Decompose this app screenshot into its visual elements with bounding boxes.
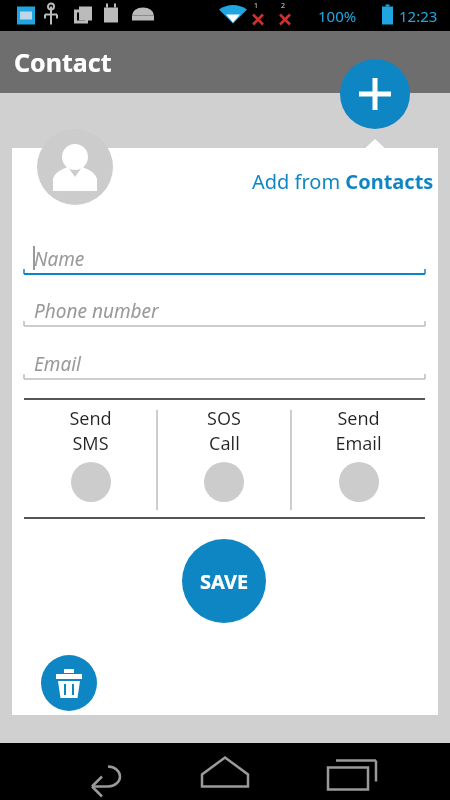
button[interactable]: SOS [164, 406, 284, 516]
staticText: SAVE [200, 568, 249, 595]
staticText: Contact [14, 45, 112, 79]
staticText: Name [34, 246, 85, 272]
staticText: Phone number [34, 298, 159, 324]
button[interactable]: Delete [41, 655, 97, 711]
staticText: 1 [254, 1, 259, 11]
button[interactable]: Contact photo [37, 129, 113, 205]
staticText: 2 [281, 1, 286, 11]
staticText: Call [209, 431, 240, 456]
staticText: 100% [318, 6, 357, 26]
button[interactable]: Phone number [24, 296, 425, 336]
button[interactable]: Add from Contacts [252, 168, 434, 195]
staticText: Email [34, 351, 81, 377]
button[interactable]: Send [298, 406, 418, 516]
button[interactable]: SAVE [182, 539, 266, 623]
button[interactable]: Email [24, 349, 425, 389]
staticText: 12:23 [399, 6, 438, 26]
staticText: Send [69, 406, 112, 431]
staticText: Email [335, 431, 382, 456]
staticText: Send [337, 406, 380, 431]
button[interactable]: Name [24, 244, 425, 284]
button[interactable]: Send [30, 406, 150, 516]
button[interactable]: Add contact [340, 59, 410, 129]
staticText: SOS [207, 406, 241, 431]
staticText: SMS [72, 431, 109, 456]
